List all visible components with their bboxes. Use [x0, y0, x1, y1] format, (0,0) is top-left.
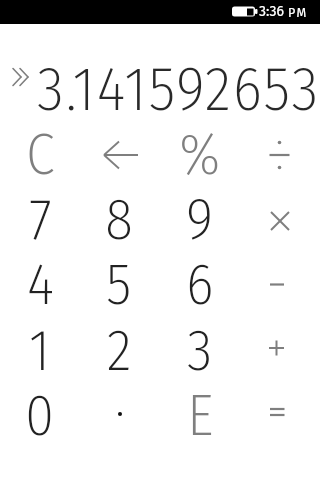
button[interactable]: 0: [0, 383, 80, 448]
staticText: 7: [29, 185, 52, 250]
staticText: 4: [27, 250, 54, 315]
button[interactable]: [240, 318, 320, 383]
button[interactable]: [80, 122, 160, 187]
staticText: 8: [105, 185, 134, 250]
button[interactable]: 1: [0, 318, 80, 383]
staticText: 0: [25, 381, 55, 446]
staticText: 2: [107, 316, 132, 381]
staticText: 6: [186, 250, 214, 315]
button[interactable]: [80, 383, 160, 448]
button[interactable]: [240, 383, 320, 448]
button[interactable]: 5: [80, 252, 160, 317]
button[interactable]: [240, 187, 320, 252]
staticText: 1: [29, 316, 51, 381]
staticText: PM: [288, 5, 308, 20]
button[interactable]: C: [0, 122, 80, 187]
staticText: 3.141592653: [37, 52, 320, 126]
button[interactable]: [4, 62, 36, 92]
button[interactable]: 9: [160, 187, 240, 252]
button[interactable]: 3: [160, 318, 240, 383]
button[interactable]: [240, 252, 320, 317]
button[interactable]: E: [160, 383, 240, 448]
button[interactable]: 4: [0, 252, 80, 317]
staticText: 3: [187, 316, 213, 381]
staticText: 3:36: [259, 3, 284, 20]
staticText: C: [26, 120, 55, 185]
staticText: E: [187, 381, 214, 446]
button[interactable]: 6: [160, 252, 240, 317]
button[interactable]: %: [160, 122, 240, 187]
button[interactable]: 8: [80, 187, 160, 252]
button[interactable]: 7: [0, 187, 80, 252]
button[interactable]: [240, 122, 320, 187]
staticText: 9: [186, 185, 214, 250]
button[interactable]: 2: [80, 318, 160, 383]
staticText: %: [179, 120, 221, 185]
staticText: 5: [106, 250, 132, 315]
